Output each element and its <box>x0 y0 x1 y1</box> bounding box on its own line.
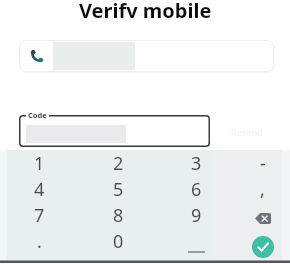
staticText: , <box>260 177 265 202</box>
staticText: 8 <box>113 203 124 228</box>
staticText: Verify mobile <box>79 0 212 18</box>
staticText: . <box>37 229 42 254</box>
button[interactable]: 0 <box>79 228 157 254</box>
button[interactable]: 9 <box>157 202 235 228</box>
staticText: - <box>260 151 266 176</box>
other: Phone <box>31 50 43 62</box>
staticText: 9 <box>191 203 202 228</box>
other: Backspace <box>255 213 271 224</box>
button[interactable]: 7 <box>0 202 79 228</box>
button[interactable]: - <box>235 150 290 176</box>
button[interactable]: 3 <box>157 150 235 176</box>
button[interactable]: Confirm <box>235 228 290 254</box>
button[interactable]: 5 <box>79 176 157 202</box>
staticText: 6 <box>191 177 202 202</box>
button[interactable]: Confirm <box>252 236 274 258</box>
staticText: 4 <box>34 177 45 202</box>
staticText: 0 <box>113 229 124 254</box>
staticText: 1 <box>34 151 45 176</box>
button[interactable]: Resend <box>231 126 263 138</box>
button[interactable]: Code <box>19 115 210 147</box>
button[interactable]: . <box>0 228 79 254</box>
button[interactable]: 6 <box>157 176 235 202</box>
button[interactable]: 1 <box>0 150 79 176</box>
button[interactable]: , <box>235 176 290 202</box>
staticText: 7 <box>34 203 45 228</box>
button[interactable]: 2 <box>79 150 157 176</box>
button[interactable]: 8 <box>79 202 157 228</box>
staticText: 3 <box>191 151 202 176</box>
button[interactable]: Phone <box>19 40 274 72</box>
button[interactable]: Backspace <box>235 202 290 228</box>
button[interactable] <box>157 228 235 254</box>
staticText: 5 <box>113 177 124 202</box>
staticText: 2 <box>113 151 124 176</box>
button[interactable]: 4 <box>0 176 79 202</box>
staticText: Code <box>28 110 47 120</box>
